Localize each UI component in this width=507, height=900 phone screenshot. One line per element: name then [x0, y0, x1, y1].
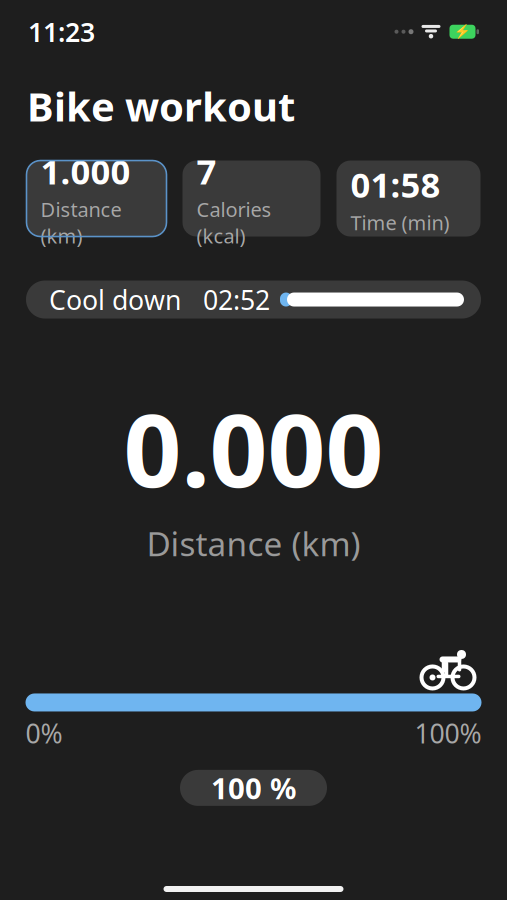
button[interactable]: 1.000	[26, 160, 166, 236]
button[interactable]: 7	[182, 160, 320, 236]
staticText: 100 %	[211, 768, 296, 807]
staticText: Bike workout	[27, 79, 295, 132]
staticText: 0%	[25, 715, 62, 751]
staticText: 100%	[414, 715, 481, 751]
staticText: Cool down	[49, 282, 181, 317]
button[interactable]: 01:58	[336, 160, 480, 236]
staticText: Time (min)	[350, 209, 449, 236]
staticText: 7	[196, 148, 216, 194]
staticText: 0.000	[123, 380, 383, 515]
staticText: 02:52	[203, 282, 270, 317]
staticText: Distance (km)	[40, 196, 121, 249]
staticText: 1.000	[40, 148, 130, 194]
staticText: 01:58	[350, 161, 440, 207]
staticText: Calories (kcal)	[196, 196, 271, 249]
staticText: 11:23	[28, 14, 95, 49]
button[interactable]: 100 %	[180, 770, 327, 806]
staticText: ⚡	[454, 24, 471, 39]
staticText: Distance (km)	[146, 521, 360, 565]
